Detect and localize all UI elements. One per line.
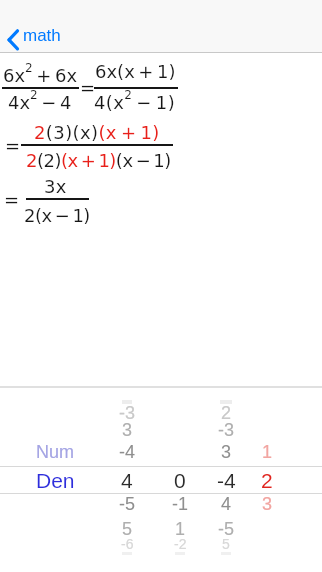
staticText: = (80, 77, 96, 98)
staticText: Den (36, 469, 75, 492)
staticText: 5 (122, 519, 133, 539)
staticText: 4 (121, 469, 133, 492)
staticText: 5 (222, 536, 230, 552)
staticText: 2 (261, 469, 273, 492)
staticText: 6x2 + 6x (3, 61, 78, 86)
button[interactable] (155, 392, 205, 557)
staticText: 0 (174, 469, 186, 492)
staticText: 4 (221, 494, 232, 514)
button[interactable] (2, 18, 68, 48)
staticText: -5 (218, 519, 235, 539)
staticText: -3 (218, 420, 235, 440)
staticText: -2 (174, 536, 187, 552)
staticText: = (4, 189, 20, 210)
staticText: 4x2 − 4 (8, 88, 72, 113)
button[interactable] (250, 392, 290, 557)
staticText: -5 (119, 494, 136, 514)
staticText: -4 (217, 469, 236, 492)
staticText: 6x(x + 1) (95, 61, 176, 82)
staticText: 2(3)(x)(x + 1) (34, 122, 160, 143)
staticText: -6 (121, 536, 134, 552)
button[interactable] (25, 392, 85, 557)
staticText: 3 (221, 442, 232, 462)
staticText: 2 (221, 403, 232, 423)
staticText: -4 (119, 442, 136, 462)
staticText: math (23, 26, 61, 45)
staticText: -1 (172, 494, 189, 514)
staticText: Num (36, 442, 75, 462)
button[interactable] (205, 392, 250, 557)
staticText: 3 (262, 494, 273, 514)
button[interactable] (100, 392, 152, 557)
staticText: 3x (44, 176, 67, 197)
staticText: 1 (262, 442, 273, 462)
staticText: 2(2)(x + 1)(x − 1) (26, 150, 171, 171)
staticText: 3 (122, 420, 133, 440)
staticText: -3 (119, 403, 136, 423)
staticText: 2(x − 1) (24, 205, 90, 226)
staticText: 4(x2 − 1) (94, 88, 176, 113)
staticText: = (5, 135, 21, 156)
staticText: 1 (175, 519, 186, 539)
